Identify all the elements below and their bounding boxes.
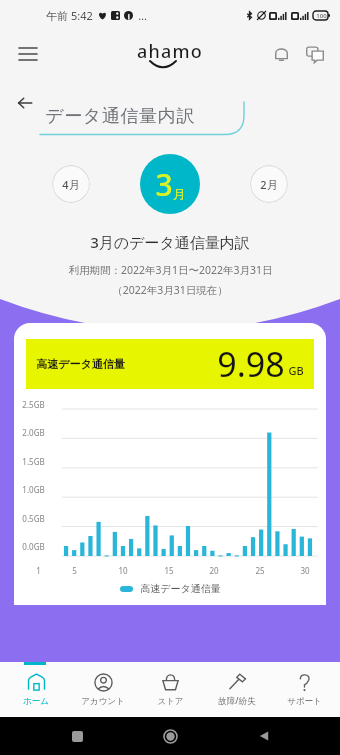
staticText: 0.5GB: [22, 513, 45, 524]
staticText: 高速データ通信量: [36, 357, 125, 371]
staticText: ahamo: [137, 39, 203, 64]
button[interactable]: 4月: [52, 165, 90, 203]
button[interactable]: Menu: [10, 36, 46, 72]
button[interactable]: アカウント: [72, 662, 134, 717]
staticText: 25: [255, 565, 265, 576]
staticText: 100: [316, 12, 327, 20]
button[interactable]: 故障/紛失: [206, 662, 268, 717]
button[interactable]: 2月: [250, 165, 288, 203]
button[interactable]: ホーム: [5, 662, 67, 717]
staticText: （2022年3月31日現在）: [112, 283, 228, 297]
staticText: 15: [164, 565, 174, 576]
button[interactable]: Back: [8, 86, 42, 120]
button[interactable]: サポート: [273, 662, 335, 717]
staticText: 4月: [62, 177, 80, 192]
staticText: 1.5GB: [22, 456, 45, 467]
staticText: 10: [118, 565, 128, 576]
staticText: サポート: [287, 696, 322, 707]
staticText: 月: [173, 186, 186, 202]
staticText: 3月のデータ通信量内訳: [90, 232, 250, 252]
staticText: 2.5GB: [22, 399, 45, 410]
staticText: …: [138, 8, 147, 23]
staticText: 2.0GB: [22, 427, 45, 438]
staticText: 3: [155, 164, 173, 205]
staticText: 故障/紛失: [218, 695, 256, 707]
button[interactable]: Notifications: [264, 37, 298, 71]
button[interactable]: Back: [247, 719, 281, 753]
staticText: 1.0GB: [22, 484, 45, 495]
button[interactable]: Chat: [298, 37, 332, 71]
staticText: ストア: [157, 696, 184, 707]
button[interactable]: Recents: [60, 719, 94, 753]
button[interactable]: 3: [140, 154, 200, 214]
staticText: GB: [288, 363, 304, 378]
button[interactable]: ストア: [139, 662, 201, 717]
staticText: 20: [209, 565, 219, 576]
staticText: 高速データ通信量: [140, 582, 221, 595]
staticText: 30: [300, 565, 310, 576]
staticText: ホーム: [23, 696, 49, 707]
button[interactable]: Home: [153, 719, 187, 753]
staticText: 5: [72, 565, 77, 576]
staticText: 2月: [260, 177, 278, 192]
staticText: 午前 5:42: [46, 8, 93, 23]
staticText: 1: [36, 565, 41, 576]
button[interactable]: ahamo: [137, 39, 203, 70]
staticText: 0.0GB: [22, 541, 45, 552]
staticText: アカウント: [81, 696, 125, 707]
staticText: データ通信量内訳: [45, 105, 195, 128]
staticText: 9.98: [217, 341, 285, 387]
staticText: 利用期間：2022年3月1日〜2022年3月31日: [68, 263, 273, 277]
